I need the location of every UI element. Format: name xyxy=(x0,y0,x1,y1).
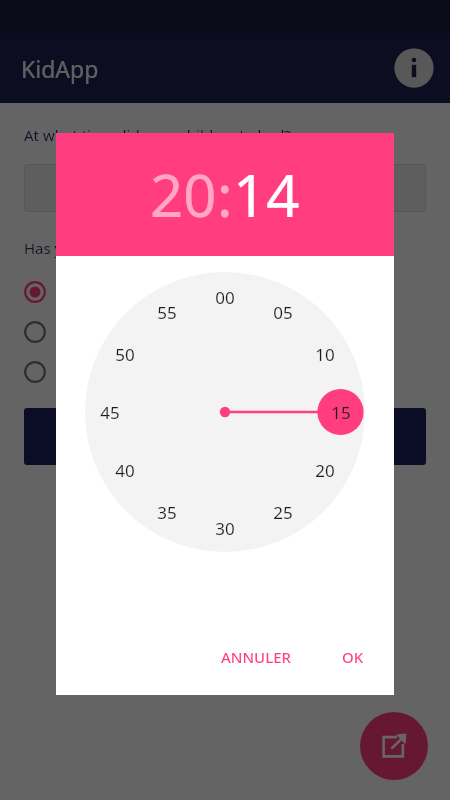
button[interactable]: Information xyxy=(394,48,434,88)
button[interactable]: OK xyxy=(334,639,372,675)
button[interactable]: 20 xyxy=(150,155,217,234)
button[interactable]: Share xyxy=(360,712,428,780)
staticText: KidApp xyxy=(21,53,99,84)
staticText: 40 xyxy=(115,459,135,482)
button[interactable]: Yes xyxy=(24,272,426,312)
staticText: Don't know xyxy=(60,362,140,382)
staticText: : xyxy=(217,155,233,234)
button[interactable]: No xyxy=(24,312,426,352)
staticText: 15 xyxy=(331,401,351,424)
staticText: OK xyxy=(342,647,364,667)
staticText: 00 xyxy=(215,286,235,309)
button[interactable]: Don't know xyxy=(24,352,426,392)
staticText: 35 xyxy=(157,501,177,524)
staticText: 20 xyxy=(315,459,335,482)
button[interactable] xyxy=(24,164,426,212)
button[interactable]: SAVE xyxy=(24,408,426,465)
button[interactable]: ANNULER xyxy=(213,639,300,675)
staticText: 50 xyxy=(115,343,135,366)
staticText: 05 xyxy=(273,301,293,324)
staticText: 55 xyxy=(157,301,177,324)
staticText: 45 xyxy=(100,401,120,424)
staticText: Has your child slept well? xyxy=(24,238,201,258)
staticText: 30 xyxy=(215,517,235,540)
staticText: ANNULER xyxy=(221,647,292,667)
button[interactable]: 00 xyxy=(85,272,365,552)
staticText: 10 xyxy=(315,343,335,366)
button[interactable]: 14 xyxy=(233,155,300,234)
staticText: At what time did your child go to bed? xyxy=(24,125,292,145)
staticText: 25 xyxy=(273,501,293,524)
